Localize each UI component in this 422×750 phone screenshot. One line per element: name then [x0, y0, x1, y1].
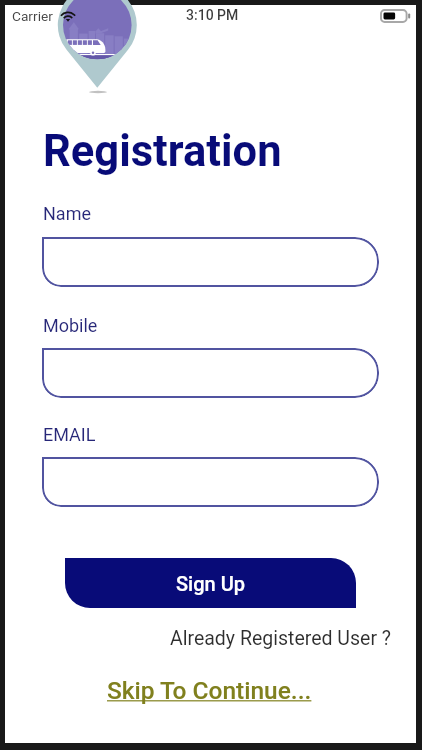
button[interactable] [42, 457, 379, 507]
staticText: EMAIL [43, 424, 96, 445]
button[interactable] [42, 348, 379, 398]
other: Battery [381, 10, 410, 22]
button[interactable] [42, 237, 379, 287]
button[interactable]: Skip To Continue... [107, 676, 312, 705]
staticText: Carrier [12, 8, 53, 24]
staticText: 3:10 PM [186, 7, 239, 23]
staticText: Mobile [43, 315, 98, 336]
staticText: Name [43, 203, 91, 224]
button[interactable]: Sign Up [65, 558, 356, 608]
staticText: Sign Up [176, 572, 245, 595]
button[interactable]: Already Registered User ? [170, 627, 392, 650]
staticText: Registration [43, 126, 282, 177]
